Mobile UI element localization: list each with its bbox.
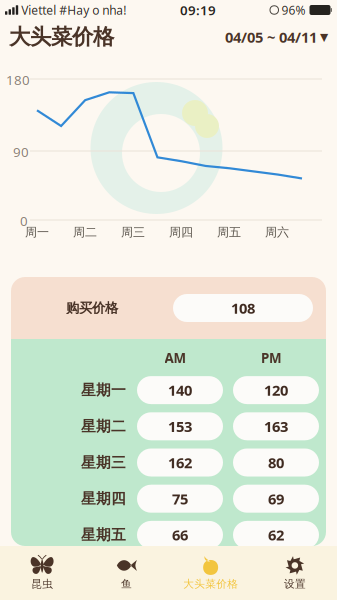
button[interactable]: 62 (137, 557, 223, 585)
staticText: 04/05 ~ 04/11 (225, 27, 317, 47)
staticText: 星期一 (81, 381, 126, 399)
staticText: 星期三 (81, 453, 126, 471)
staticText: 星期二 (81, 417, 126, 435)
staticText: 0 (20, 212, 28, 230)
staticText: 周二 (73, 225, 97, 240)
button[interactable]: 153 (137, 412, 223, 440)
staticText: 75 (172, 489, 188, 508)
staticText: 星期四 (81, 490, 126, 508)
staticText: 周六 (265, 225, 289, 240)
staticText: 周五 (217, 225, 241, 240)
staticText: 120 (264, 380, 288, 400)
staticText: 163 (264, 417, 288, 436)
button[interactable]: 鱼 (84, 548, 168, 597)
staticText: 周三 (121, 225, 145, 240)
button[interactable]: 162 (137, 448, 223, 476)
staticText: 周四 (169, 225, 193, 240)
staticText: 大头菜价格 (9, 24, 114, 50)
button[interactable]: 66 (137, 521, 223, 549)
staticText: 80 (268, 453, 284, 472)
staticText: PM (261, 349, 282, 367)
staticText: 09:19 (180, 1, 216, 19)
staticText: Viettel #Hay o nha! (18, 2, 126, 18)
button[interactable]: 163 (233, 412, 319, 440)
staticText: 96% (278, 2, 305, 18)
button[interactable]: 108 (173, 294, 313, 322)
staticText: 鱼 (121, 577, 132, 590)
staticText: 66 (172, 525, 188, 545)
staticText: 大头菜价格 (183, 577, 238, 590)
staticText: 140 (168, 380, 192, 400)
staticText: 153 (168, 417, 192, 436)
button[interactable]: 昆虫 (0, 548, 84, 597)
button[interactable]: 04/05 ~ 04/11 (225, 27, 328, 47)
staticText: 星期六 (81, 562, 126, 580)
staticText: 设置 (284, 577, 306, 590)
staticText: ▼ (320, 31, 328, 43)
button[interactable]: 58 (233, 557, 319, 585)
staticText: 昆虫 (31, 577, 53, 590)
button[interactable]: 69 (233, 485, 319, 513)
button[interactable]: 75 (137, 485, 223, 513)
button[interactable]: 设置 (253, 548, 337, 597)
staticText: 周一 (25, 225, 49, 240)
staticText: AM (164, 349, 186, 367)
staticText: 108 (231, 298, 255, 318)
staticText: 90 (13, 143, 29, 161)
staticText: 购买价格 (66, 300, 118, 316)
button[interactable]: 120 (233, 376, 319, 404)
button[interactable]: 大头菜价格 (168, 548, 253, 597)
staticText: 180 (6, 71, 30, 89)
button[interactable]: 80 (233, 448, 319, 476)
staticText: 62 (268, 525, 284, 545)
staticText: 162 (168, 453, 192, 472)
button[interactable]: 62 (233, 521, 319, 549)
staticText: 星期五 (81, 526, 126, 544)
staticText: 69 (268, 489, 284, 508)
button[interactable]: 140 (137, 376, 223, 404)
